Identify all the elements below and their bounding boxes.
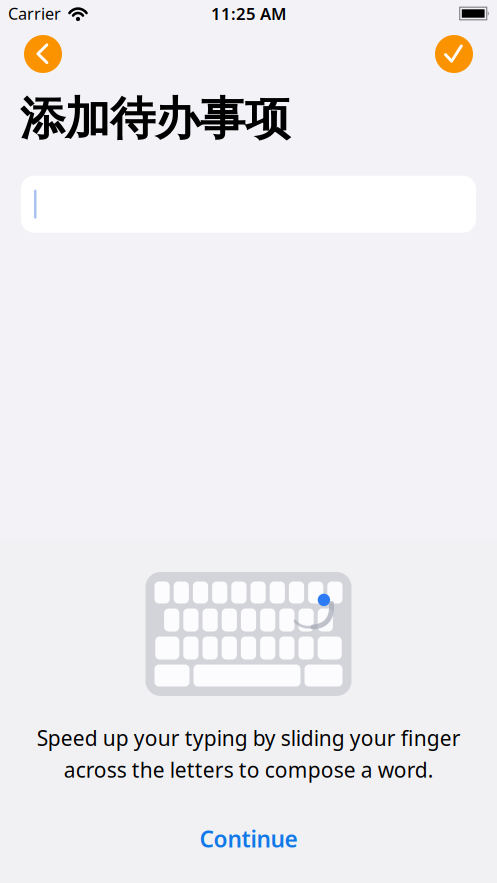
staticText: 11:25 AM: [211, 2, 286, 24]
button[interactable]: Confirm: [435, 35, 473, 73]
button[interactable]: Continue: [199, 824, 297, 854]
staticText: Speed up your typing by sliding your fin…: [36, 724, 460, 784]
button[interactable]: Back: [24, 35, 62, 73]
staticText: 添加待办事项: [20, 91, 290, 147]
staticText: Continue: [199, 824, 297, 854]
staticText: Carrier: [8, 3, 61, 24]
button[interactable]: Text field: [21, 176, 476, 233]
